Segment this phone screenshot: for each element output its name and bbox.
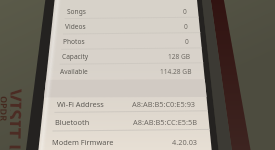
staticText: 114.28 GB: [160, 67, 192, 76]
button[interactable]: Available: [58, 64, 194, 79]
staticText: A8:AB:B5:C0:E5:93: [132, 99, 196, 109]
staticText: Bluetooth: [55, 117, 90, 127]
staticText: Songs: [67, 7, 86, 16]
staticText: Wi-Fi Address: [57, 99, 104, 109]
button[interactable]: Capacity: [60, 49, 193, 64]
staticText: A8:AB:B5:CC:E5:5B: [133, 117, 197, 127]
staticText: OPDR: [0, 96, 11, 122]
button[interactable]: Songs: [65, 4, 189, 19]
staticText: Photos: [63, 37, 85, 46]
button[interactable]: Wi-Fi Address: [55, 95, 198, 113]
button[interactable]: Modem Firmware: [50, 133, 200, 150]
staticText: 0: [183, 7, 187, 16]
staticText: 0: [185, 37, 189, 46]
staticText: Available: [60, 67, 88, 76]
staticText: Videos: [65, 22, 86, 31]
staticText: 4.20.03: [172, 137, 198, 147]
staticText: VISIT U: [9, 89, 29, 150]
button[interactable]: Photos: [61, 34, 191, 49]
staticText: Modem Firmware: [52, 137, 114, 147]
button[interactable]: Bluetooth: [53, 113, 199, 131]
button[interactable]: Videos: [63, 19, 190, 34]
staticText: Capacity: [62, 52, 89, 61]
staticText: 0: [184, 22, 188, 31]
staticText: 128 GB: [168, 52, 191, 61]
